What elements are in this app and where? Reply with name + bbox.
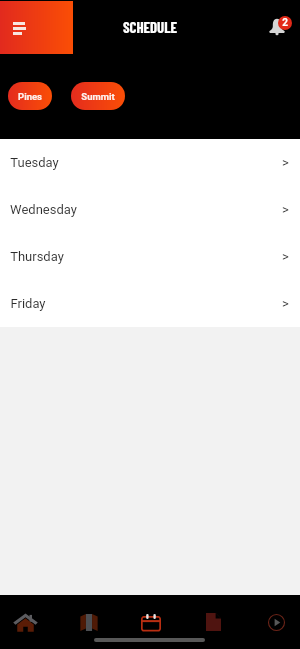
button[interactable]: Friday: [0, 280, 300, 327]
staticText: Wednesday: [10, 202, 77, 217]
button[interactable]: Map: [66, 599, 112, 645]
staticText: >: [282, 296, 289, 311]
button[interactable]: Summit: [71, 82, 125, 110]
staticText: >: [282, 202, 289, 217]
staticText: 2: [282, 17, 288, 29]
button[interactable]: Pines: [8, 82, 52, 110]
button[interactable]: Documents: [190, 599, 236, 645]
staticText: >: [282, 155, 289, 170]
button[interactable]: Open navigation menu: [0, 1, 73, 54]
button[interactable]: Schedule: [128, 599, 174, 645]
staticText: Thursday: [10, 249, 64, 264]
staticText: Tuesday: [10, 155, 59, 170]
staticText: Pines: [18, 91, 42, 102]
button[interactable]: Tuesday: [0, 139, 300, 186]
staticText: Friday: [10, 296, 46, 311]
button[interactable]: Media: [253, 599, 299, 645]
button[interactable]: Thursday: [0, 233, 300, 280]
staticText: Summit: [81, 91, 115, 102]
button[interactable]: Home: [2, 599, 48, 645]
staticText: SCHEDULE: [123, 18, 177, 36]
button[interactable]: Wednesday: [0, 186, 300, 233]
staticText: >: [282, 249, 289, 264]
button[interactable]: Notifications: [268, 14, 294, 40]
